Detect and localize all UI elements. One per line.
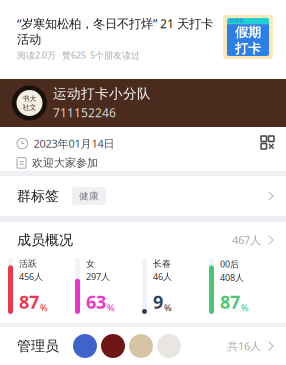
staticText: 假期 打卡 [235, 24, 261, 57]
staticText: 群标签 [17, 187, 59, 205]
staticText: 711152246 [53, 104, 116, 121]
button[interactable]: 成员概况 [0, 222, 286, 258]
staticText: 456人 [19, 270, 43, 283]
staticText: % [107, 302, 115, 314]
staticText: % [40, 302, 48, 314]
staticText: 00后 [220, 258, 239, 270]
button[interactable]: 群标签 [0, 176, 286, 216]
staticText: 408人 [220, 271, 244, 284]
staticText: % [164, 302, 172, 314]
staticText: 2023年01月14日 [33, 136, 114, 151]
button[interactable]: “岁寒知松柏，冬日不打烊” 21 天打卡活动 [0, 0, 286, 79]
staticText: “岁寒知松柏，冬日不打烊” 21 天打卡活动 [17, 15, 213, 47]
staticText: 长春 [153, 258, 171, 269]
staticText: 活跃 [19, 258, 37, 269]
staticText: 87 [19, 289, 39, 314]
staticText: 健康 [79, 190, 99, 202]
staticText: 阅读2.0万 赞625 5个朋友读过 [17, 49, 140, 61]
staticText: 欢迎大家参加 [32, 156, 98, 170]
staticText: 运动打卡小分队 [53, 85, 151, 102]
button[interactable]: 管理员 [0, 327, 286, 365]
staticText: 9 [153, 289, 163, 314]
staticText: 共16人 [227, 338, 261, 353]
staticText: 书大 社文 [22, 94, 36, 112]
staticText: 297人 [86, 270, 110, 283]
staticText: % [241, 302, 249, 314]
staticText: 成员概况 [17, 231, 73, 249]
staticText: 467人 [232, 232, 261, 247]
staticText: 女 [86, 258, 95, 269]
staticText: 87 [220, 289, 240, 314]
button[interactable]: 群二维码 [261, 136, 274, 149]
staticText: 63 [86, 289, 106, 314]
staticText: 管理员 [17, 337, 59, 355]
staticText: 46人 [153, 270, 172, 283]
